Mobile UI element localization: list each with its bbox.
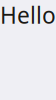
staticText: Hello [0, 0, 56, 30]
